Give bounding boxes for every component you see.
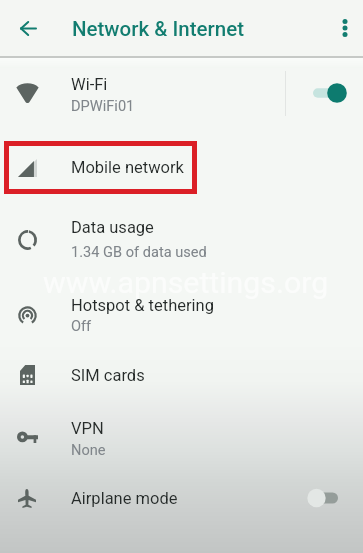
button[interactable]: Wi-Fi toggle [298,65,358,121]
staticText: Data usage [71,218,154,237]
staticText: DPWiFi01 [71,97,135,114]
staticText: www.apnsettings.org [43,265,329,301]
button[interactable] [0,286,363,342]
button[interactable]: Back [6,6,51,51]
staticText: None [71,441,106,458]
button[interactable]: Wi-Fi toggle [0,65,363,121]
button[interactable]: More options [323,6,363,50]
button[interactable] [0,140,363,196]
staticText: VPN [71,419,104,438]
staticText: Mobile network [71,158,184,177]
staticText: 1.34 GB of data used [71,243,207,260]
staticText: Hotspot & tethering [71,296,214,315]
button[interactable] [0,409,363,465]
button[interactable] [0,212,363,268]
staticText: Off [71,317,92,334]
button[interactable] [0,347,363,403]
staticText: Network & Internet [72,17,244,41]
staticText: Wi-Fi [71,75,108,94]
button[interactable]: Airplane mode toggle [298,470,358,526]
staticText: Airplane mode [71,489,178,508]
button[interactable]: Airplane mode toggle [0,470,363,526]
staticText: SIM cards [71,366,145,385]
